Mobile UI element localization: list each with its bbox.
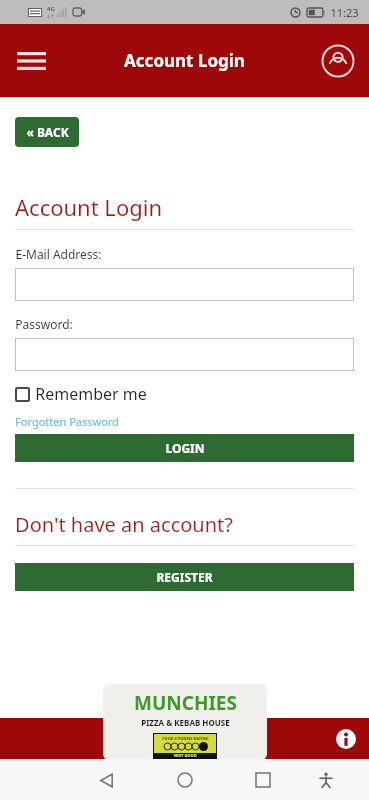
button[interactable]: Remember me — [15, 383, 147, 405]
button[interactable] — [15, 268, 354, 301]
button[interactable]: Accessibility — [311, 765, 341, 795]
button[interactable]: REGISTER — [15, 563, 354, 591]
staticText: MUNCHIES — [134, 690, 237, 716]
staticText: « BACK — [26, 124, 69, 140]
staticText: FOOD HYGIENE RATING — [162, 736, 209, 741]
staticText: VERY GOOD — [173, 753, 197, 758]
staticText: Account Login — [124, 49, 245, 72]
staticText: Password: — [15, 316, 73, 332]
staticText: 11:23 — [330, 5, 359, 20]
staticText: ↓↑ — [46, 13, 55, 19]
staticText: Remember me — [35, 383, 147, 405]
button[interactable]: « BACK — [15, 117, 79, 147]
staticText: REGISTER — [156, 569, 213, 585]
button[interactable]: Back — [91, 765, 121, 795]
button[interactable]: Account — [321, 44, 355, 78]
staticText: Forgotten Password — [15, 414, 119, 429]
button[interactable] — [15, 338, 354, 371]
staticText: PIZZA & KEBAB HOUSE — [141, 717, 230, 728]
button[interactable]: Home — [170, 765, 200, 795]
button[interactable]: Menu — [10, 40, 52, 82]
staticText: E-Mail Address: — [15, 246, 102, 262]
staticText: LOGIN — [165, 440, 205, 456]
button[interactable]: Forgotten Password — [15, 414, 119, 429]
staticText: Account Login — [15, 192, 162, 222]
button[interactable]: LOGIN — [15, 434, 354, 462]
staticText: 4G — [47, 5, 55, 13]
button[interactable]: MUNCHIES — [103, 684, 267, 760]
button[interactable]: Recents — [248, 765, 278, 795]
staticText: Don't have an account? — [15, 511, 233, 538]
button[interactable]: Information — [335, 728, 357, 750]
